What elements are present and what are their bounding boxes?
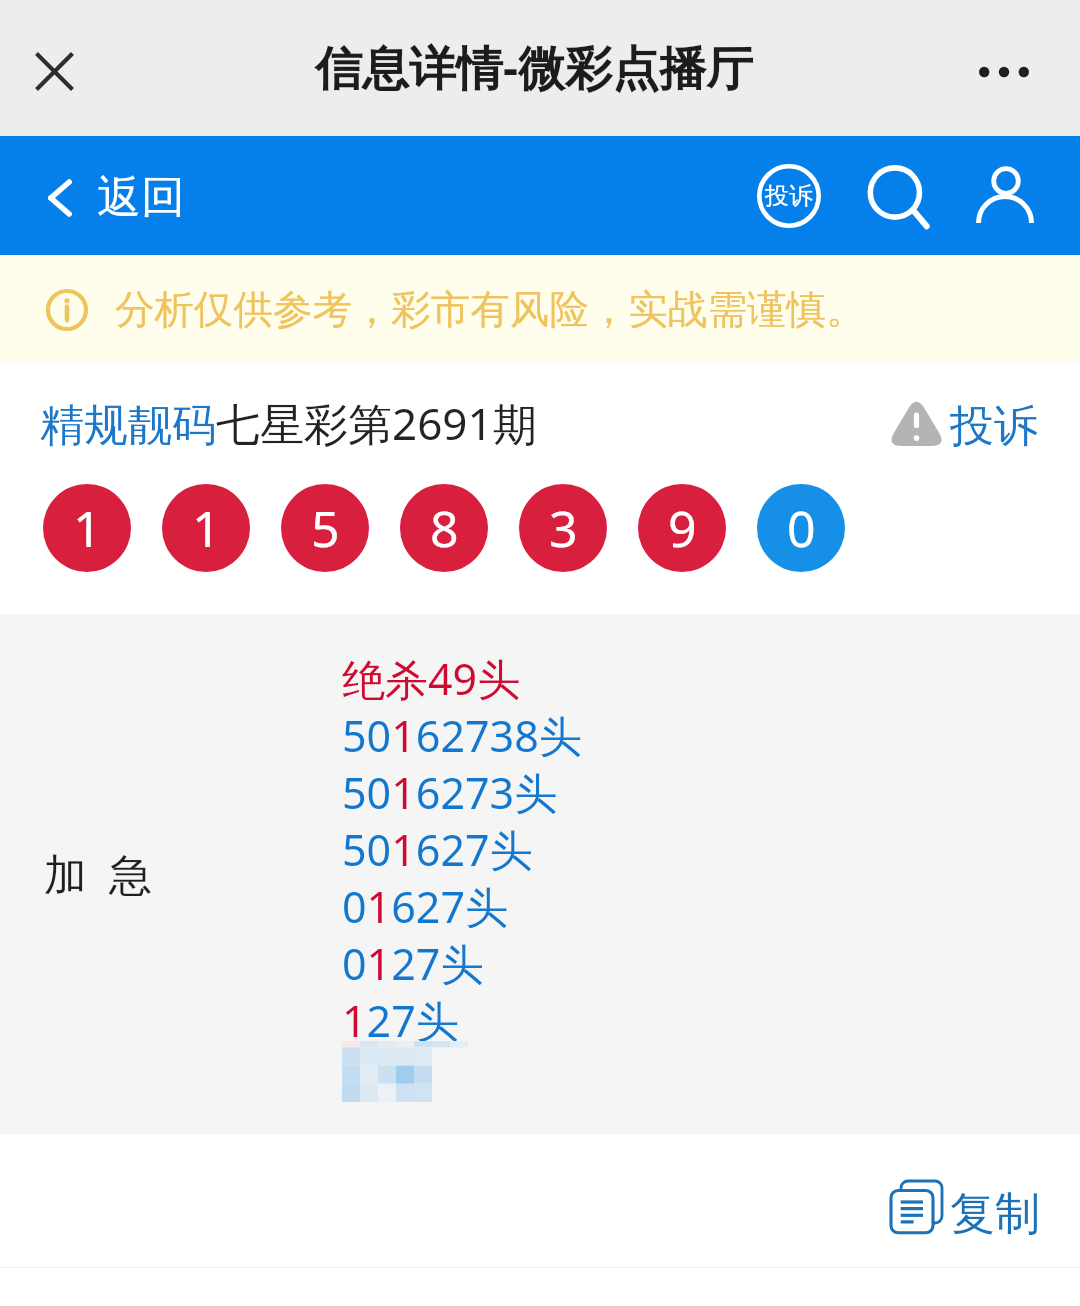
staticText: 5016273头 — [342, 763, 558, 820]
staticText: 9 — [668, 494, 697, 562]
button[interactable]: 精规靓码七星彩第2691期 — [40, 393, 537, 453]
staticText: 8 — [430, 494, 459, 562]
staticText: 信息详情-微彩点播厅 — [315, 35, 754, 99]
staticText: 50162738头 — [342, 706, 582, 763]
staticText: 1 — [73, 494, 102, 562]
button[interactable]: 复制 — [884, 1185, 1040, 1243]
staticText: 投诉 — [765, 181, 813, 211]
staticText: 0127头 — [342, 934, 484, 991]
staticText: 127头 — [342, 991, 459, 1048]
button[interactable]: 1 — [162, 484, 250, 572]
button[interactable]: 1 — [43, 484, 131, 572]
button[interactable]: Complain — [745, 152, 833, 240]
button[interactable]: 8 — [400, 484, 488, 572]
staticText: 加 急 — [44, 844, 153, 903]
button[interactable]: More options — [968, 36, 1040, 108]
staticText: 0 — [787, 494, 816, 562]
staticText: 501627头 — [342, 820, 533, 877]
button[interactable]: 5 — [281, 484, 369, 572]
staticText: 01627头 — [342, 877, 508, 934]
button[interactable]: 3 — [519, 484, 607, 572]
staticText: 复制 — [950, 1186, 1040, 1243]
button[interactable]: Search — [852, 152, 940, 240]
staticText: 5 — [311, 494, 340, 562]
button[interactable]: 投诉 — [886, 393, 1038, 448]
staticText: 3 — [549, 494, 578, 562]
staticText: 1 — [192, 494, 221, 562]
button[interactable]: 9 — [638, 484, 726, 572]
staticText: 绝杀49头 — [342, 649, 521, 706]
staticText: 投诉 — [950, 399, 1038, 454]
staticText: 返回 — [97, 170, 185, 225]
button[interactable]: 返回 — [48, 170, 185, 225]
staticText: 分析仅供参考，彩市有风险，实战需谨慎。 — [115, 285, 866, 335]
button[interactable]: Close — [18, 35, 91, 108]
button[interactable]: 0 — [757, 484, 845, 572]
button[interactable]: Account — [961, 152, 1049, 240]
